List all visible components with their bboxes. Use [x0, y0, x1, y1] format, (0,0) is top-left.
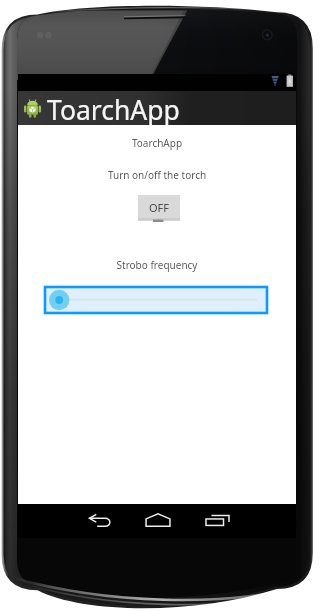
- staticText: ToarchApp: [18, 136, 296, 150]
- staticText: ToarchApp: [47, 92, 180, 126]
- staticText: OFF: [149, 200, 170, 215]
- button[interactable]: Back: [84, 508, 115, 533]
- button[interactable]: Home: [141, 507, 175, 533]
- button[interactable]: Strobo frequency slider: [45, 287, 267, 313]
- staticText: Turn on/off the torch: [18, 168, 296, 182]
- staticText: Strobo frequency: [18, 258, 296, 272]
- button[interactable]: OFF: [138, 195, 180, 223]
- button[interactable]: Recent apps: [201, 508, 234, 533]
